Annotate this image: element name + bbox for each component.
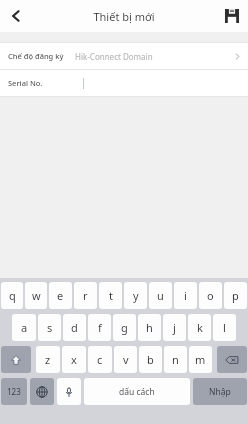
button[interactable]: u: [149, 282, 172, 309]
staticText: l: [223, 320, 226, 335]
staticText: x: [71, 352, 77, 367]
staticText: w: [32, 288, 41, 303]
button[interactable]: p: [224, 282, 247, 309]
button[interactable]: a: [12, 314, 36, 341]
staticText: n: [172, 352, 179, 367]
staticText: b: [147, 352, 154, 367]
button[interactable]: y: [124, 282, 147, 309]
button[interactable]: k: [188, 314, 211, 341]
button[interactable]: l: [213, 314, 236, 341]
staticText: h: [146, 320, 153, 335]
button[interactable]: 123: [1, 378, 27, 405]
button[interactable]: d: [63, 314, 86, 341]
button[interactable]: Serial No.: [0, 70, 248, 96]
button[interactable]: x: [62, 346, 86, 373]
button[interactable]: Voice input: [57, 378, 81, 405]
button[interactable]: e: [49, 282, 72, 309]
staticText: q: [9, 288, 16, 303]
staticText: o: [207, 288, 214, 303]
staticText: c: [97, 352, 103, 367]
staticText: i: [184, 288, 187, 303]
button[interactable]: Nhập: [193, 378, 247, 405]
staticText: u: [157, 288, 164, 303]
button[interactable]: m: [189, 346, 212, 373]
button[interactable]: c: [88, 346, 112, 373]
button[interactable]: v: [114, 346, 137, 373]
staticText: k: [197, 320, 203, 335]
staticText: dấu cách: [119, 386, 155, 398]
staticText: Hik-Connect Domain: [75, 51, 153, 62]
button[interactable]: Back: [0, 0, 32, 32]
button[interactable]: Chế độ đăng ký: [0, 43, 248, 69]
staticText: y: [133, 288, 139, 303]
button[interactable]: z: [36, 346, 60, 373]
staticText: a: [21, 320, 28, 335]
staticText: Chế độ đăng ký: [8, 51, 64, 61]
staticText: j: [173, 320, 176, 335]
button[interactable]: r: [74, 282, 97, 309]
button[interactable]: b: [139, 346, 162, 373]
button[interactable]: Change language: [30, 378, 54, 405]
staticText: t: [109, 288, 113, 303]
staticText: e: [57, 288, 64, 303]
button[interactable]: Save: [216, 0, 248, 32]
staticText: g: [121, 320, 128, 335]
button[interactable]: i: [174, 282, 197, 309]
staticText: d: [71, 320, 78, 335]
staticText: m: [195, 352, 206, 367]
staticText: Serial No.: [8, 78, 43, 88]
staticText: s: [47, 320, 53, 335]
button[interactable]: w: [25, 282, 47, 309]
button[interactable]: q: [1, 282, 23, 309]
button[interactable]: t: [99, 282, 122, 309]
button[interactable]: o: [199, 282, 222, 309]
staticText: p: [232, 288, 239, 303]
staticText: Thiết bị mới: [93, 9, 155, 24]
staticText: r: [83, 288, 88, 303]
button[interactable]: h: [138, 314, 161, 341]
button[interactable]: n: [164, 346, 187, 373]
button[interactable]: dấu cách: [84, 378, 190, 405]
button[interactable]: f: [88, 314, 111, 341]
button[interactable]: g: [113, 314, 136, 341]
button[interactable]: Shift: [1, 346, 31, 373]
button[interactable]: Backspace: [217, 346, 247, 373]
staticText: f: [98, 320, 102, 335]
staticText: 123: [7, 386, 21, 397]
staticText: z: [45, 352, 51, 367]
button[interactable]: s: [38, 314, 61, 341]
staticText: v: [123, 352, 129, 367]
staticText: Nhập: [209, 386, 231, 398]
button[interactable]: j: [163, 314, 186, 341]
